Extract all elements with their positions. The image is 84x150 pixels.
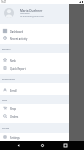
button[interactable]: Dashboard <box>0 27 69 35</box>
staticText: Quick Report <box>10 67 26 70</box>
staticText: Settings <box>10 136 20 139</box>
staticText: Enroll <box>10 89 17 92</box>
button[interactable]: Recent apps <box>61 141 70 150</box>
staticText: Maria Duehner <box>20 9 43 13</box>
button[interactable]: Enroll <box>0 86 69 94</box>
staticText: Manager <box>20 12 30 15</box>
button[interactable]: Maria Duehner <box>0 4 69 24</box>
staticText: Recent activity <box>10 37 28 40</box>
button[interactable]: Back <box>14 141 23 150</box>
staticText: REPORTS <box>2 48 11 50</box>
button[interactable]: Shop <box>0 104 69 112</box>
staticText: Dashboard <box>10 30 24 33</box>
button[interactable]: Quick Report <box>0 64 69 72</box>
staticText: SYSTEM <box>2 127 10 129</box>
button[interactable]: Recent activity <box>0 34 69 42</box>
button[interactable]: Home <box>38 141 47 150</box>
staticText: SHOP <box>2 99 8 101</box>
button[interactable]: Orders <box>0 112 69 120</box>
button[interactable]: Settings <box>0 133 69 141</box>
staticText: Shop <box>10 107 17 110</box>
staticText: Rank <box>10 59 16 62</box>
staticText: m.duehner@mail.com <box>20 15 44 18</box>
staticText: ENROLLMENT <box>2 78 16 80</box>
staticText: Orders <box>10 115 19 118</box>
staticText: 9:41 <box>1 0 7 4</box>
button[interactable]: Rank <box>0 56 69 64</box>
